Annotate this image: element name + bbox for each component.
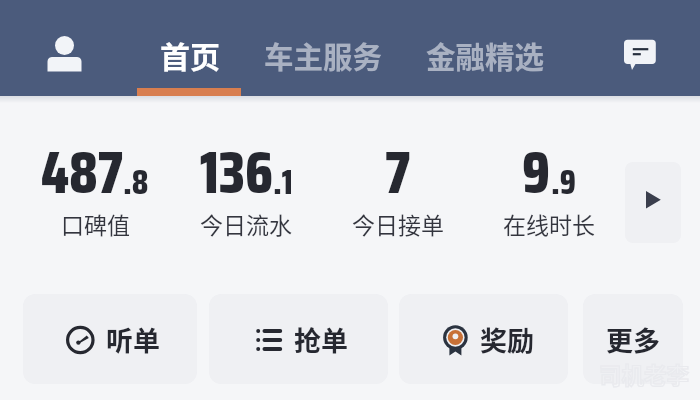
button[interactable]: 首页 (160, 33, 220, 76)
button[interactable]: 奖励 (399, 294, 568, 384)
button[interactable]: 抢单 (209, 294, 388, 384)
staticText: 487 (41, 126, 123, 219)
button[interactable]: 更多 (583, 294, 683, 384)
staticText: 今日流水 (200, 207, 292, 240)
staticText: 奖励 (480, 320, 534, 359)
button[interactable]: 136 (156, 126, 336, 219)
staticText: 7 (385, 126, 411, 219)
staticText: 车主服务 (264, 34, 383, 77)
staticText: .1 (273, 155, 293, 209)
staticText: 司机老李 (599, 358, 690, 391)
button[interactable]: Messages (616, 32, 664, 80)
button[interactable]: 车主服务 (264, 34, 383, 77)
staticText: 9 (522, 126, 551, 219)
staticText: .9 (551, 155, 576, 209)
button[interactable]: Profile (40, 22, 90, 72)
staticText: 首页 (160, 33, 220, 76)
button[interactable]: 金融精选 (426, 34, 545, 77)
staticText: 听单 (106, 320, 160, 359)
staticText: 抢单 (294, 320, 348, 359)
button[interactable]: 听单 (23, 294, 197, 384)
button[interactable]: More stats (625, 162, 681, 243)
staticText: .8 (123, 155, 149, 209)
button[interactable]: 9 (459, 126, 639, 219)
button[interactable]: 487 (5, 126, 185, 219)
staticText: 口碑值 (61, 207, 130, 240)
staticText: 今日接单 (352, 207, 444, 240)
button[interactable]: 7 (308, 126, 488, 219)
staticText: 136 (200, 126, 273, 219)
staticText: 更多 (606, 320, 660, 359)
staticText: 金融精选 (426, 34, 545, 77)
staticText: 在线时长 (503, 207, 595, 240)
